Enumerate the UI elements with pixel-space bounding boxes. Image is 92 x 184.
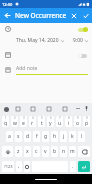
button[interactable]: Clipboard: [25, 103, 41, 114]
button[interactable]: Backspace: [78, 146, 90, 157]
staticText: f: [36, 133, 38, 140]
button[interactable]: Shift: [2, 146, 13, 157]
staticText: o: [76, 120, 80, 127]
staticText: 5: [41, 116, 43, 120]
staticText: u: [58, 120, 62, 127]
staticText: g: [44, 133, 48, 140]
button[interactable]: x: [24, 146, 31, 157]
button[interactable]: Comma: [16, 161, 22, 172]
button[interactable]: 6: [47, 116, 54, 127]
button[interactable]: Voice input: [82, 103, 90, 114]
staticText: 2: [14, 116, 16, 120]
button[interactable]: c: [33, 146, 40, 157]
button[interactable]: 9:00: [73, 37, 88, 44]
button[interactable]: 1: [2, 116, 9, 127]
button[interactable]: m: [69, 146, 76, 157]
staticText: v: [44, 148, 47, 155]
button[interactable]: GIF: [41, 103, 57, 114]
button[interactable]: All day on: [77, 26, 88, 33]
button[interactable]: a: [6, 131, 13, 142]
staticText: Add note: [16, 65, 38, 72]
staticText: e: [22, 120, 25, 127]
staticText: k: [71, 133, 74, 140]
staticText: w: [13, 120, 17, 127]
button[interactable]: b: [51, 146, 58, 157]
staticText: 9: [77, 116, 79, 120]
button[interactable]: Discard: [67, 9, 80, 22]
button[interactable]: k: [69, 131, 76, 142]
button[interactable]: Search: [10, 103, 25, 114]
button[interactable]: z: [15, 146, 22, 157]
button[interactable]: All day on: [0, 23, 92, 35]
button[interactable]: 2: [11, 116, 18, 127]
button[interactable]: Add note: [0, 64, 92, 76]
staticText: 7: [59, 116, 61, 120]
button[interactable]: Home: [35, 179, 57, 180]
staticText: x: [26, 148, 29, 155]
button[interactable]: n: [60, 146, 67, 157]
staticText: m: [70, 148, 75, 155]
button[interactable]: Period: [70, 161, 76, 172]
button[interactable]: Emoji: [24, 161, 30, 172]
button[interactable]: l: [78, 131, 85, 142]
staticText: q: [4, 120, 8, 127]
staticText: New Occurrence: [15, 11, 67, 20]
button[interactable]: d: [24, 131, 31, 142]
staticText: ,: [18, 163, 20, 170]
staticText: 6: [50, 116, 52, 120]
button[interactable]: j: [60, 131, 67, 142]
button[interactable]: 4: [29, 116, 36, 127]
button[interactable]: 8: [65, 116, 72, 127]
staticText: l: [81, 133, 83, 140]
button[interactable]: 7: [56, 116, 63, 127]
staticText: b: [53, 148, 57, 155]
button[interactable]: 5: [38, 116, 45, 127]
staticText: 8: [68, 116, 70, 120]
staticText: c: [35, 148, 38, 155]
button[interactable]: 9: [74, 116, 81, 127]
staticText: 4: [32, 116, 34, 120]
staticText: t: [41, 120, 43, 127]
button[interactable]: Thu, May 14, 2020: [16, 37, 64, 44]
button[interactable]: 3: [20, 116, 27, 127]
staticText: 9:00: [73, 37, 83, 44]
staticText: n: [62, 148, 66, 155]
button[interactable]: v: [42, 146, 49, 157]
button[interactable]: Repeat off: [77, 52, 88, 59]
staticText: 3: [23, 116, 25, 120]
button[interactable]: Save: [80, 9, 92, 22]
staticText: y: [49, 120, 52, 127]
staticText: 12:00: [2, 2, 13, 7]
staticText: a: [8, 133, 11, 140]
button[interactable]: Enter: [78, 161, 90, 172]
staticText: z: [17, 148, 20, 155]
button[interactable]: More: [73, 103, 82, 114]
staticText: Thu, May 14, 2020: [16, 37, 59, 44]
staticText: ?123: [4, 164, 13, 169]
button[interactable]: h: [51, 131, 58, 142]
staticText: r: [31, 120, 34, 127]
button[interactable]: Gboard: [2, 105, 10, 113]
staticText: .: [72, 163, 74, 170]
button[interactable]: g: [42, 131, 49, 142]
staticText: 0: [86, 116, 88, 120]
staticText: h: [53, 133, 57, 140]
button[interactable]: 0: [83, 116, 90, 127]
staticText: p: [85, 120, 89, 127]
button[interactable]: Stickers: [57, 103, 73, 114]
staticText: 1: [5, 116, 7, 120]
button[interactable]: s: [15, 131, 22, 142]
staticText: j: [63, 133, 65, 140]
button[interactable]: Symbols: [2, 161, 14, 172]
staticText: i: [68, 120, 70, 127]
button[interactable]: Back: [0, 8, 15, 23]
staticText: s: [17, 133, 20, 140]
staticText: d: [26, 133, 30, 140]
button[interactable]: f: [33, 131, 40, 142]
button[interactable]: Repeat off: [0, 49, 92, 61]
